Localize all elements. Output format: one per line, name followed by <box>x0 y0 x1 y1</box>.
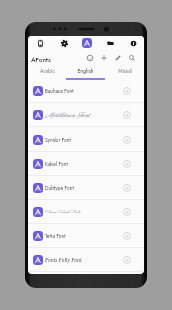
button[interactable]: Download Schoon School Font <box>120 205 134 219</box>
button[interactable]: Folder <box>104 37 116 49</box>
button[interactable]: Syndor Font <box>28 128 144 152</box>
button[interactable]: Bauhaus Font <box>28 79 144 103</box>
button[interactable]: Dubtype Font <box>28 176 144 200</box>
button[interactable]: Middletown Font <box>28 103 144 127</box>
staticText: English <box>77 68 94 75</box>
staticText: Fonts Folly Font <box>45 257 82 263</box>
button[interactable]: English <box>66 65 105 80</box>
button[interactable]: Device <box>34 37 46 49</box>
staticText: Kabel Font <box>45 161 68 168</box>
staticText: AFonts <box>31 55 51 65</box>
button[interactable]: Download Middletown Font <box>120 108 134 122</box>
button[interactable]: AFonts logo <box>82 38 92 48</box>
button[interactable]: Kabel Font <box>28 152 144 176</box>
button[interactable]: Add <box>97 51 111 65</box>
staticText: Middletown Font <box>45 111 90 120</box>
staticText: Tetra Font <box>45 233 66 240</box>
button[interactable]: Download Fonts Folly Font <box>120 253 134 267</box>
button[interactable]: Info <box>127 37 139 49</box>
button[interactable]: Schoon School Font <box>28 200 144 224</box>
button[interactable]: Settings <box>58 37 70 49</box>
button[interactable]: Edit <box>111 51 125 65</box>
button[interactable]: Mixed <box>105 65 144 80</box>
button[interactable]: Download Tetra Font <box>120 229 134 243</box>
staticText: Arabic <box>40 68 55 75</box>
button[interactable]: Fonts Folly Font <box>28 248 144 272</box>
staticText: Dubtype Font <box>45 185 74 192</box>
button[interactable]: Download Syndor Font <box>120 133 134 147</box>
button[interactable]: Download Kabel Font <box>120 157 134 171</box>
staticText: Syndor Font <box>45 137 71 144</box>
staticText: Mixed <box>118 68 132 75</box>
button[interactable]: Download Bauhaus Font <box>120 84 134 98</box>
staticText: Schoon School Font <box>45 209 81 216</box>
button[interactable]: Download Dubtype Font <box>120 181 134 195</box>
button[interactable]: Search <box>125 51 139 65</box>
button[interactable]: Tetra Font <box>28 224 144 248</box>
button[interactable]: Emoji <box>83 51 97 65</box>
staticText: Bauhaus Font <box>45 88 74 95</box>
button[interactable]: Arabic <box>28 65 66 80</box>
